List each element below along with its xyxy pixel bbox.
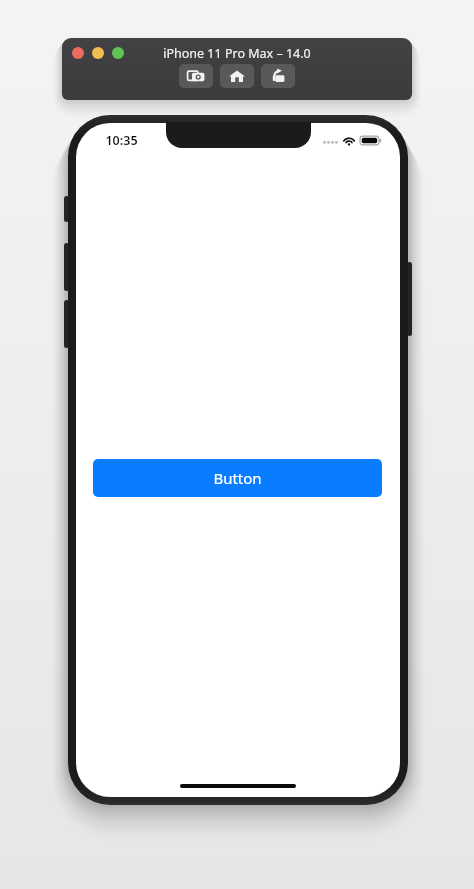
button[interactable]: Button bbox=[93, 459, 382, 497]
staticText: iPhone 11 Pro Max – 14.0 bbox=[163, 45, 311, 62]
button[interactable]: Zoom bbox=[112, 47, 124, 59]
staticText: 10:35 bbox=[105, 132, 138, 149]
button[interactable]: Share bbox=[261, 64, 295, 88]
button[interactable]: Home bbox=[220, 64, 254, 88]
staticText: Button bbox=[213, 468, 262, 488]
button[interactable]: Screenshot bbox=[179, 64, 213, 88]
button[interactable]: Close bbox=[72, 47, 84, 59]
button[interactable]: Minimize bbox=[92, 47, 104, 59]
